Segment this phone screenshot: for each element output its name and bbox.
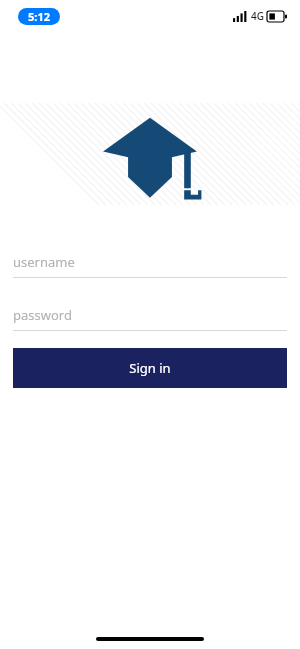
staticText: 4G xyxy=(251,9,264,23)
other: Home indicator xyxy=(96,637,204,641)
staticText: password xyxy=(13,306,72,324)
button[interactable]: username xyxy=(13,247,287,278)
staticText: username xyxy=(13,253,75,271)
staticText: 5:12 xyxy=(28,9,50,24)
button[interactable]: Sign in xyxy=(13,348,287,388)
button[interactable]: password xyxy=(13,300,287,331)
staticText: Sign in xyxy=(129,359,171,377)
